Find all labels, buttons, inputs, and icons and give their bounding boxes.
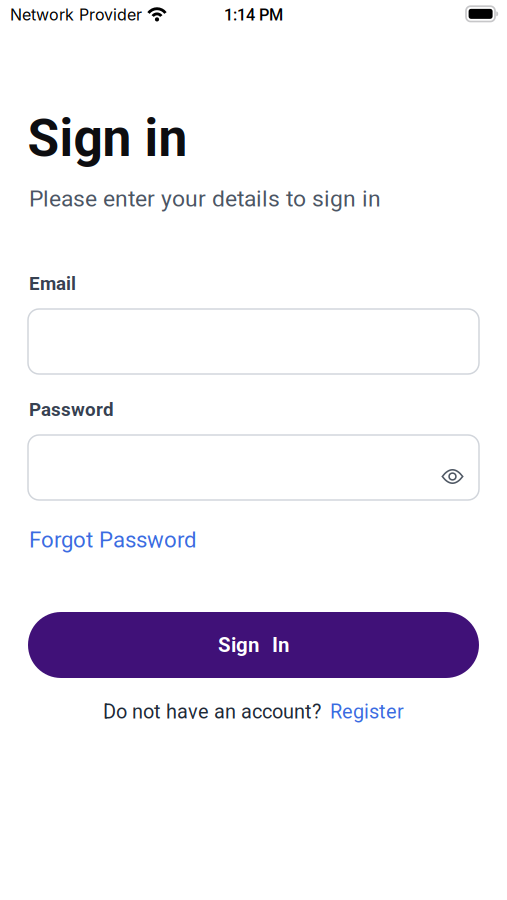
staticText: Please enter your details to sign in [29, 185, 381, 212]
staticText: Email [29, 272, 76, 294]
staticText: Password [29, 399, 114, 421]
staticText: Do not have an account? [103, 700, 321, 723]
secureTextField[interactable] [46, 455, 461, 480]
staticText: 1:14 PM [224, 5, 283, 24]
staticText: In [272, 633, 289, 657]
button[interactable]: Sign [28, 612, 479, 678]
staticText: Forgot Password [29, 527, 197, 553]
staticText: Sign in [27, 108, 187, 169]
staticText: Sign [218, 633, 259, 657]
button[interactable]: Forgot Password [29, 527, 197, 553]
staticText: Register [330, 700, 404, 723]
staticText: Network Provider [10, 5, 142, 24]
button[interactable]: Register [330, 700, 404, 723]
button[interactable]: Show password [433, 460, 471, 492]
